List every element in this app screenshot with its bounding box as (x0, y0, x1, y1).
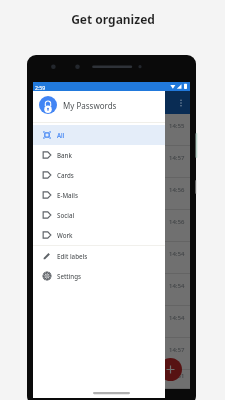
staticText: 14:54 (169, 314, 185, 322)
button[interactable]: More options (174, 91, 188, 114)
staticText: 14:51 (169, 372, 185, 380)
button[interactable]: Settings (33, 266, 165, 286)
staticText: Cards (57, 171, 74, 179)
button[interactable]: Instagram (33, 274, 190, 306)
button[interactable]: Amazon (33, 114, 190, 146)
button[interactable]: Dropbox (33, 178, 190, 210)
staticText: user@example.com (43, 133, 94, 140)
staticText: 14:55 (169, 122, 185, 130)
staticText: Dropbox (43, 185, 72, 195)
staticText: 14:54 (169, 250, 185, 258)
button[interactable]: LinkedIn (33, 306, 190, 338)
staticText: user@example.com (43, 197, 94, 204)
staticText: Facebook (43, 217, 75, 227)
staticText: Gmail (43, 249, 63, 259)
button[interactable]: Netflix (33, 338, 190, 370)
button[interactable]: Edit labels (33, 246, 165, 266)
staticText: 14:57 (169, 346, 185, 354)
button[interactable]: Bank (33, 145, 165, 165)
staticText: My Passwords (63, 100, 117, 111)
button[interactable]: All (33, 125, 165, 145)
staticText: user@example.com (43, 229, 94, 236)
staticText: user@example.com (43, 165, 94, 172)
staticText: 14:56 (169, 218, 185, 226)
staticText: Get organized (71, 11, 155, 27)
button[interactable]: Social (33, 205, 165, 225)
staticText: Social (57, 211, 75, 219)
button[interactable]: E-Mails (33, 185, 165, 205)
button[interactable]: Cards (33, 165, 165, 185)
staticText: Bank (57, 151, 72, 159)
staticText: Amazon (43, 121, 70, 131)
staticText: E-Mails (57, 191, 79, 199)
staticText: 14:57 (169, 154, 185, 162)
staticText: All (57, 131, 65, 139)
staticText: 14:56 (169, 186, 185, 194)
button[interactable]: Gmail (33, 242, 190, 274)
staticText: Work (57, 231, 73, 239)
button[interactable]: Add password (159, 358, 182, 381)
staticText: 14:54 (169, 282, 185, 290)
staticText: Settings (57, 272, 82, 280)
staticText: Bank of America (43, 153, 97, 163)
button[interactable]: Work (33, 225, 165, 245)
staticText: Edit labels (57, 252, 88, 260)
button[interactable]: Facebook (33, 210, 190, 242)
button[interactable]: Bank of America (33, 146, 190, 178)
staticText: 2:59 (35, 84, 46, 91)
button[interactable]: PayPal (33, 370, 190, 389)
